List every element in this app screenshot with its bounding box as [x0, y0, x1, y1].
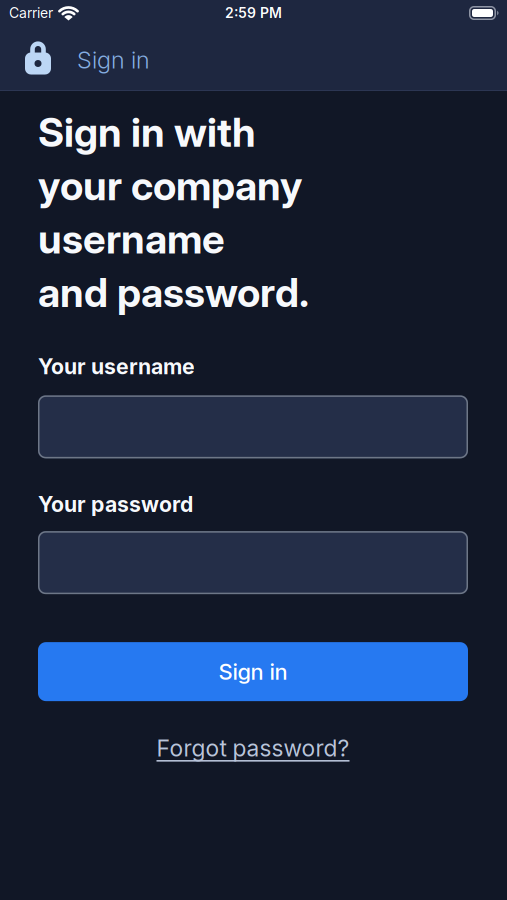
button[interactable]: Forgot password? [156, 734, 349, 762]
staticText: 2:59 PM [225, 4, 282, 21]
staticText: Forgot password? [156, 734, 349, 762]
staticText: Sign in [218, 658, 287, 685]
staticText: Your password [38, 491, 193, 517]
button[interactable]: Your password [38, 531, 468, 594]
staticText: Sign in with [38, 108, 256, 156]
button[interactable]: Sign in [38, 642, 468, 701]
staticText: your company [38, 161, 302, 210]
staticText: username [38, 215, 225, 263]
staticText: Your username [38, 354, 195, 379]
staticText: and password. [38, 268, 309, 317]
staticText: Sign in [77, 46, 150, 74]
staticText: Carrier [9, 4, 53, 21]
button[interactable]: Your username [38, 395, 468, 458]
